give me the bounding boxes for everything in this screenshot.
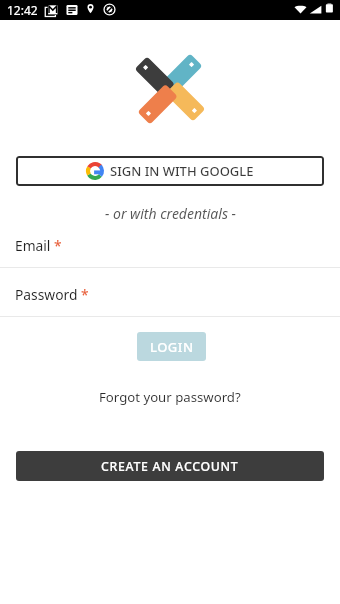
button[interactable]: Forgot your password?: [99, 388, 241, 406]
staticText: 12:42: [7, 2, 38, 18]
button[interactable]: CREATE AN ACCOUNT: [16, 451, 324, 481]
staticText: LOGIN: [150, 338, 194, 356]
staticText: *: [81, 285, 89, 304]
staticText: Password: [15, 285, 78, 304]
staticText: Email: [15, 236, 51, 255]
staticText: CREATE AN ACCOUNT: [101, 458, 239, 475]
staticText: - or with credentials -: [105, 204, 236, 223]
staticText: SIGN IN WITH GOOGLE: [110, 162, 254, 180]
button[interactable]: SIGN IN WITH GOOGLE: [16, 156, 324, 186]
staticText: *: [54, 236, 62, 255]
button[interactable]: LOGIN: [137, 332, 206, 361]
